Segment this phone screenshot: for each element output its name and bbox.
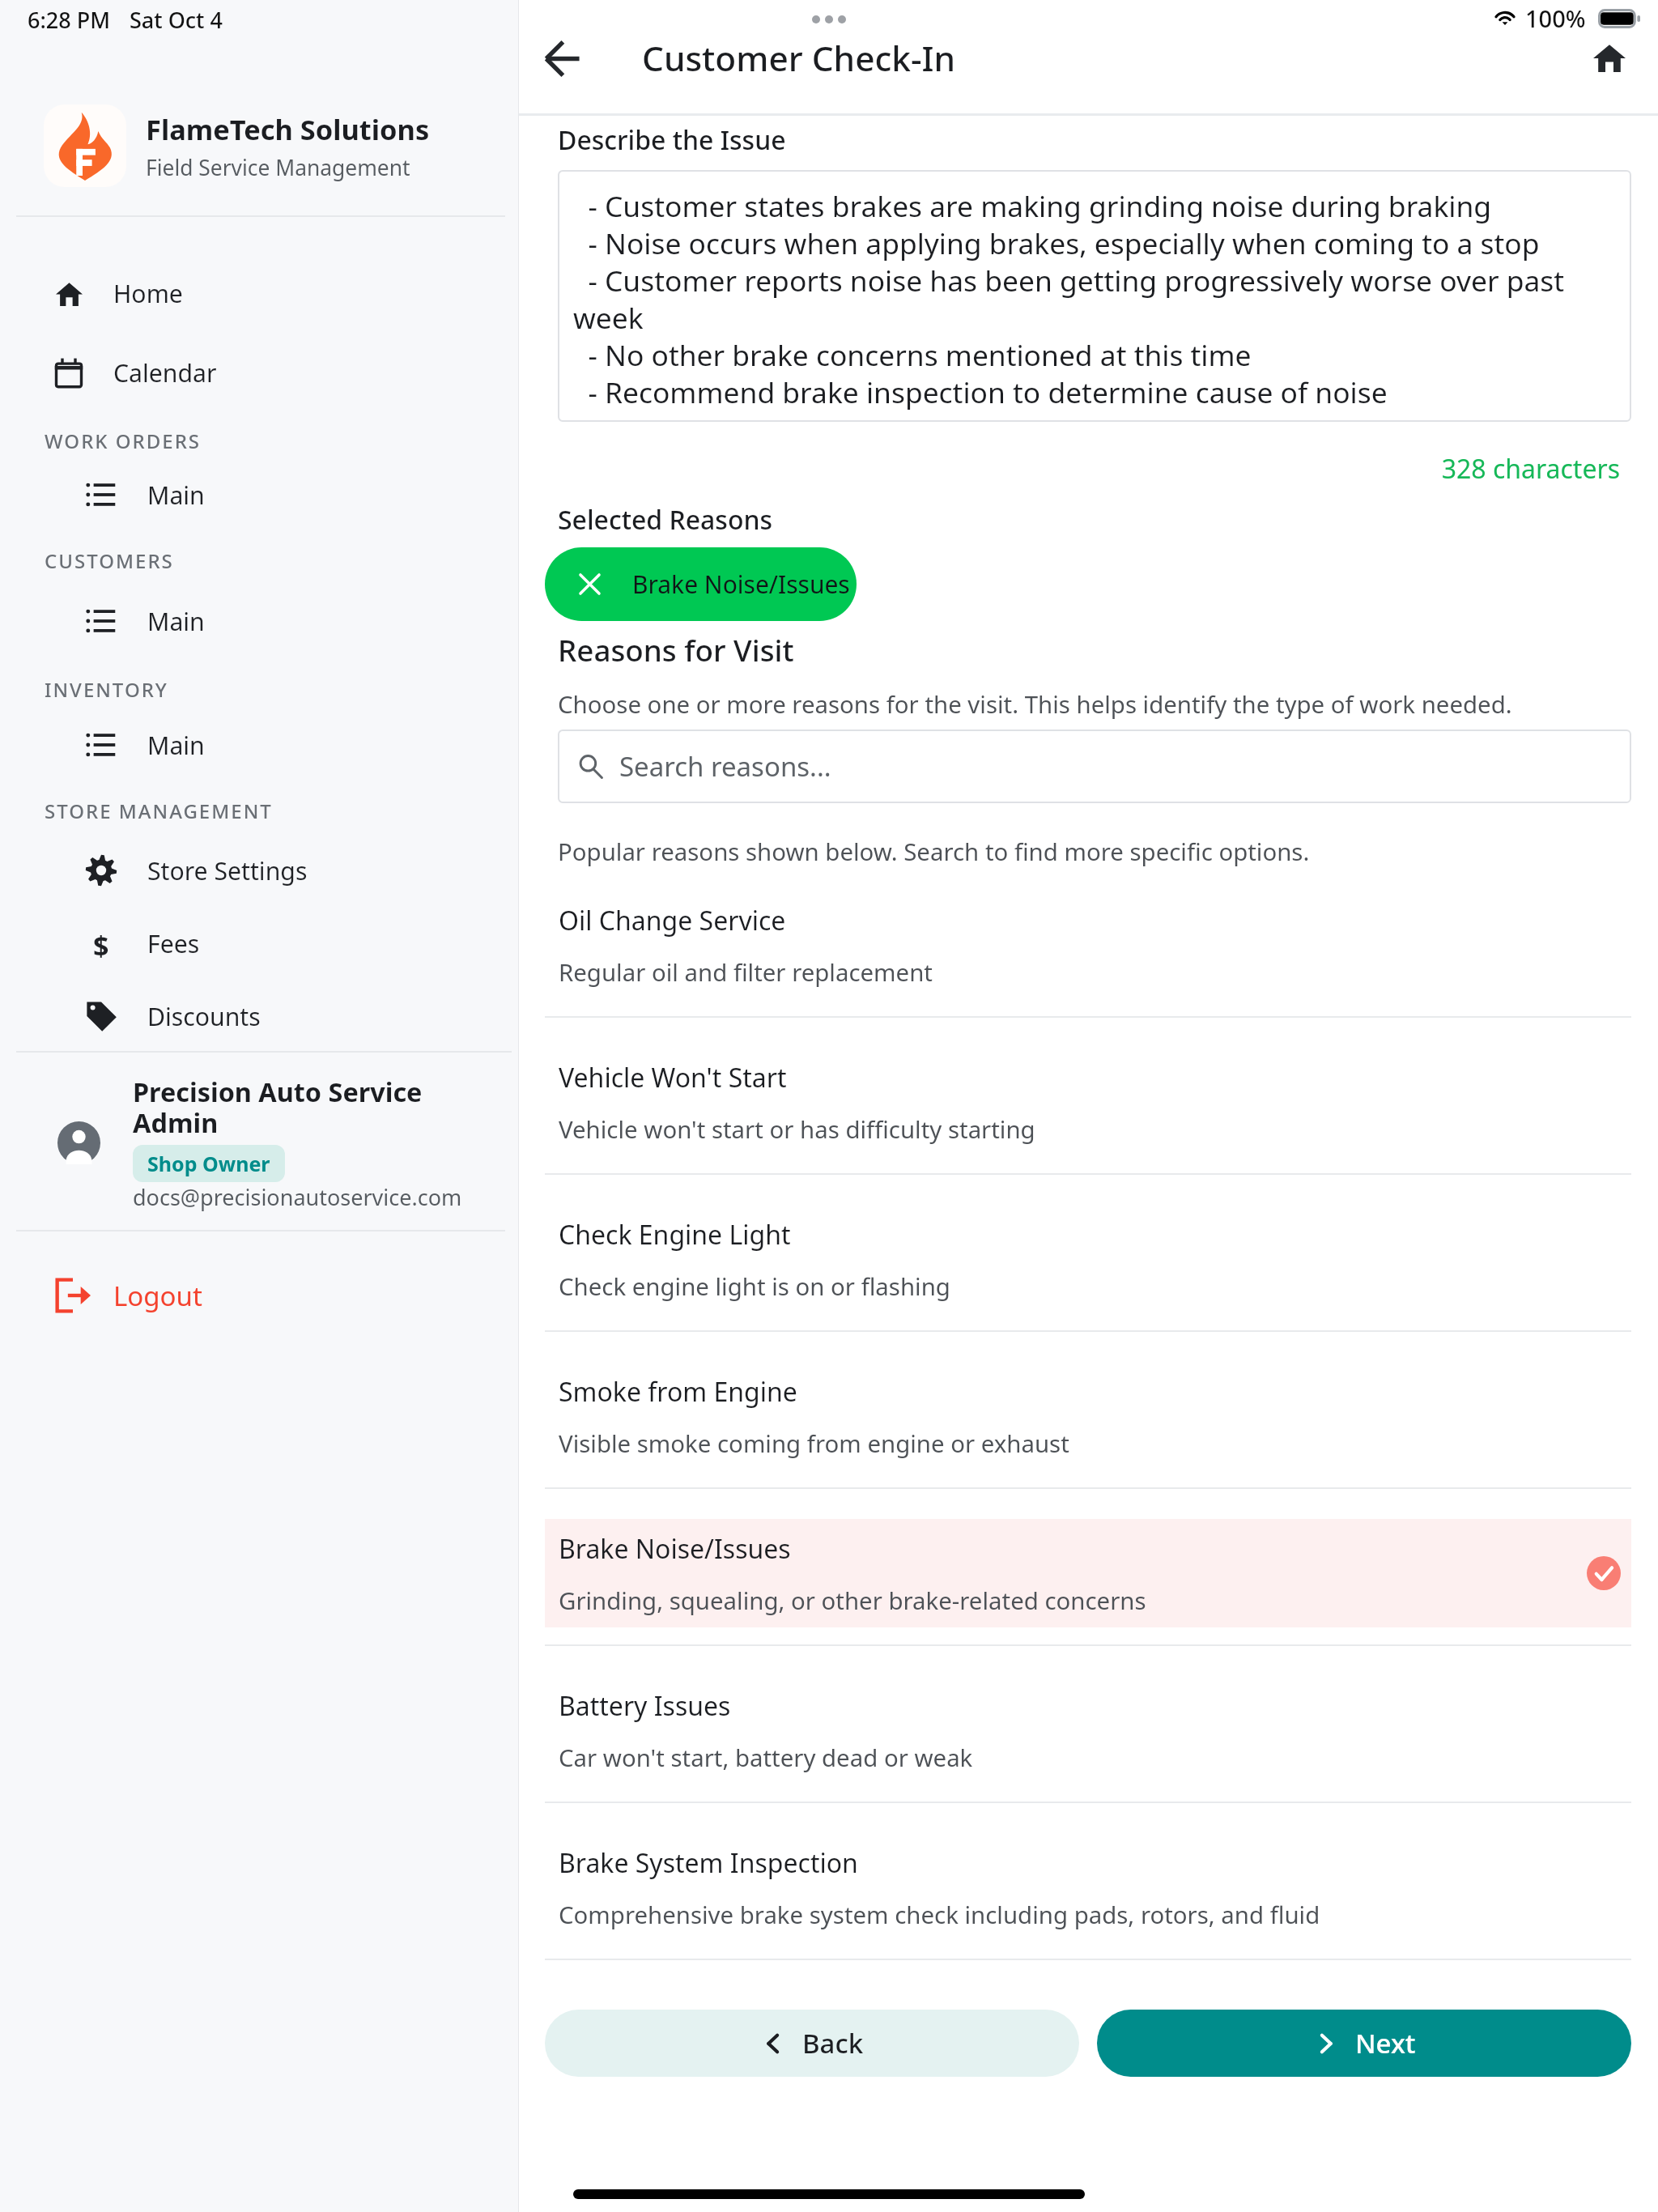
staticText: - Customer states brakes are making grin… — [573, 186, 1616, 411]
staticText: Check engine light is on or flashing — [559, 1270, 950, 1303]
staticText: Selected Reasons — [558, 502, 773, 538]
staticText: FlameTech Solutions — [146, 110, 430, 148]
button[interactable]: Smoke from Engine — [545, 1332, 1631, 1489]
button[interactable]: Battery Issues — [545, 1646, 1631, 1803]
staticText: INVENTORY — [45, 676, 168, 703]
button[interactable]: Brake Noise/Issues — [545, 547, 857, 621]
staticText: Fees — [147, 927, 200, 960]
staticText: Brake Noise/Issues — [559, 1531, 791, 1567]
button[interactable]: Calendar — [0, 331, 518, 415]
button[interactable]: $ — [0, 905, 518, 981]
staticText: Brake System Inspection — [559, 1845, 858, 1881]
staticText: Reasons for Visit — [558, 630, 794, 670]
staticText: Brake Noise/Issues — [632, 568, 850, 601]
staticText: Main — [147, 729, 205, 762]
button[interactable]: Back — [545, 2010, 1079, 2077]
staticText: docs@precisionautoservice.com — [133, 1182, 462, 1212]
button[interactable]: Back — [529, 26, 594, 91]
staticText: 6:28 PM — [28, 5, 110, 35]
staticText: Battery Issues — [559, 1688, 731, 1724]
staticText: Visible smoke coming from engine or exha… — [559, 1427, 1069, 1460]
staticText: Next — [1355, 2025, 1416, 2061]
button[interactable]: Discounts — [0, 981, 518, 1051]
staticText: $ — [93, 927, 109, 959]
staticText: Car won't start, battery dead or weak — [559, 1742, 973, 1774]
button[interactable]: Oil Change Service — [545, 861, 1631, 1018]
staticText: Precision Auto Service Admin — [133, 1074, 423, 1140]
staticText: Popular reasons shown below. Search to f… — [558, 836, 1310, 868]
staticText: Field Service Management — [146, 153, 410, 182]
staticText: 328 characters — [558, 451, 1620, 487]
staticText: Main — [147, 605, 205, 638]
staticText: STORE MANAGEMENT — [45, 798, 273, 824]
button[interactable]: Store Settings — [0, 836, 518, 905]
staticText: Check Engine Light — [559, 1217, 791, 1253]
staticText: Main — [147, 479, 205, 512]
staticText: Oil Change Service — [559, 903, 786, 938]
button[interactable]: Check Engine Light — [545, 1175, 1631, 1332]
staticText: Back — [802, 2025, 864, 2061]
button[interactable]: Main — [0, 709, 518, 781]
staticText: CUSTOMERS — [45, 547, 174, 574]
staticText: Smoke from Engine — [559, 1374, 797, 1410]
button[interactable]: Brake System Inspection — [545, 1803, 1631, 1960]
button[interactable]: Next — [1097, 2010, 1631, 2077]
staticText: Grinding, squealing, or other brake-rela… — [559, 1585, 1146, 1617]
staticText: Regular oil and filter replacement — [559, 956, 933, 989]
staticText: Vehicle won't start or has difficulty st… — [559, 1113, 1035, 1146]
staticText: Store Settings — [147, 854, 308, 887]
button[interactable]: Home — [1577, 26, 1642, 91]
staticText: Home — [113, 277, 183, 310]
button[interactable]: Vehicle Won't Start — [545, 1018, 1631, 1175]
button[interactable]: Main — [0, 582, 518, 660]
staticText: WORK ORDERS — [45, 428, 201, 454]
button[interactable]: Home — [0, 256, 518, 331]
staticText: Comprehensive brake system check includi… — [559, 1899, 1320, 1931]
staticText: Search reasons... — [619, 748, 831, 785]
staticText: 100% — [1525, 2, 1586, 34]
staticText: Calendar — [113, 356, 217, 389]
staticText: Shop Owner — [147, 1150, 270, 1177]
staticText: Logout — [113, 1278, 202, 1314]
button[interactable]: Main — [0, 459, 518, 530]
button[interactable]: Logout — [0, 1260, 518, 1331]
staticText: Discounts — [147, 1000, 261, 1033]
staticText: Customer Check-In — [642, 35, 956, 82]
staticText: Vehicle Won't Start — [559, 1060, 787, 1095]
staticText: Describe the Issue — [558, 122, 786, 158]
staticText: Sat Oct 4 — [130, 5, 223, 35]
staticText: Choose one or more reasons for the visit… — [558, 688, 1512, 721]
button[interactable]: Brake Noise/Issues — [545, 1489, 1631, 1646]
